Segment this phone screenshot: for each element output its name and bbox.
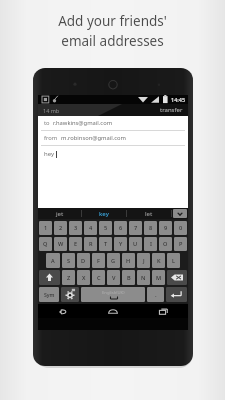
staticText: Q	[43, 240, 48, 248]
button[interactable]: 4	[84, 221, 97, 235]
button[interactable]: Z	[62, 270, 75, 285]
staticText: 5	[104, 224, 108, 232]
button[interactable]: M	[152, 270, 165, 285]
button[interactable]: C	[92, 270, 105, 285]
button[interactable]: .	[147, 287, 164, 302]
staticText: 0	[179, 224, 183, 232]
staticText: Y	[119, 240, 123, 248]
button[interactable]: 5	[99, 221, 112, 235]
staticText: R	[89, 240, 93, 248]
button[interactable]: N	[137, 270, 150, 285]
button[interactable]: Keyboard settings	[61, 287, 79, 302]
staticText: 4	[89, 224, 93, 232]
button[interactable]: transfer	[155, 105, 188, 115]
staticText: P	[179, 240, 183, 248]
button[interactable]: 3	[69, 221, 82, 235]
button[interactable]: Y	[114, 237, 127, 251]
staticText: D	[81, 257, 86, 265]
staticText: G	[111, 257, 116, 265]
staticText: T	[104, 240, 108, 248]
button[interactable]: jet	[38, 208, 81, 219]
button[interactable]: Home	[88, 304, 138, 318]
staticText: 9	[164, 224, 168, 232]
staticText: 6	[119, 224, 123, 232]
button[interactable]: 1	[39, 221, 52, 235]
staticText: .	[155, 291, 157, 299]
staticText: J	[143, 257, 145, 265]
staticText: from	[44, 134, 58, 142]
button[interactable]: L	[167, 253, 180, 268]
button[interactable]: U	[129, 237, 142, 251]
button[interactable]: H	[122, 253, 135, 268]
button[interactable]: 7	[129, 221, 142, 235]
button[interactable]: F	[92, 253, 105, 268]
button[interactable]: 0	[174, 221, 187, 235]
button[interactable]: from	[38, 131, 188, 145]
button[interactable]: G	[107, 253, 120, 268]
staticText: 1	[44, 224, 48, 232]
button[interactable]: hey	[38, 146, 188, 208]
staticText: r.hawkins@gmail.com	[53, 119, 113, 127]
staticText: English(UK)	[102, 290, 125, 296]
staticText: key	[99, 210, 109, 218]
staticText: A	[51, 257, 55, 265]
staticText: W	[58, 240, 64, 248]
button[interactable]: A	[46, 253, 60, 268]
staticText: 14:45	[171, 96, 186, 103]
button[interactable]: W	[54, 237, 67, 251]
button[interactable]: O	[159, 237, 172, 251]
button[interactable]: Backspace	[167, 270, 187, 285]
button[interactable]: J	[137, 253, 150, 268]
staticText: M	[156, 274, 162, 282]
button[interactable]: Show more suggestions	[173, 209, 187, 218]
staticText: E	[74, 240, 78, 248]
staticText: 7	[134, 224, 138, 232]
button[interactable]: X	[77, 270, 90, 285]
staticText: V	[112, 274, 116, 282]
button[interactable]: let	[127, 208, 171, 219]
staticText: X	[82, 274, 86, 282]
button[interactable]: Back	[38, 304, 88, 318]
staticText: jet	[56, 210, 64, 218]
button[interactable]: 9	[159, 221, 172, 235]
staticText: m.robinson@gmail.com	[61, 134, 126, 142]
button[interactable]: T	[99, 237, 112, 251]
button[interactable]: K	[152, 253, 165, 268]
staticText: Z	[67, 274, 71, 282]
button[interactable]: S	[62, 253, 75, 268]
staticText: L	[172, 257, 175, 265]
staticText: transfer	[160, 106, 183, 114]
button[interactable]: V	[107, 270, 120, 285]
staticText: H	[126, 257, 131, 265]
staticText: O	[163, 240, 168, 248]
button[interactable]: key	[82, 208, 126, 219]
staticText: let	[145, 210, 153, 218]
staticText: C	[97, 274, 101, 282]
staticText: 14 mb	[43, 107, 60, 114]
staticText: Add your friends'	[58, 12, 167, 30]
button[interactable]: to	[38, 116, 188, 130]
staticText: B	[127, 274, 131, 282]
button[interactable]: Space	[81, 287, 145, 302]
button[interactable]: B	[122, 270, 135, 285]
staticText: 3	[74, 224, 78, 232]
button[interactable]: Shift	[39, 270, 60, 285]
button[interactable]: Recent apps	[138, 304, 188, 318]
button[interactable]: Q	[39, 237, 52, 251]
staticText: Sym	[44, 291, 55, 298]
button[interactable]: 6	[114, 221, 127, 235]
button[interactable]: R	[84, 237, 97, 251]
button[interactable]: E	[69, 237, 82, 251]
staticText: 8	[149, 224, 153, 232]
button[interactable]: Sym	[39, 287, 59, 302]
button[interactable]: Enter	[166, 287, 187, 302]
staticText: 2	[59, 224, 63, 232]
button[interactable]: D	[77, 253, 90, 268]
staticText: U	[133, 240, 138, 248]
button[interactable]: I	[144, 237, 157, 251]
staticText: to	[44, 119, 50, 127]
button[interactable]: 2	[54, 221, 67, 235]
button[interactable]: 8	[144, 221, 157, 235]
button[interactable]: P	[174, 237, 187, 251]
staticText: I	[150, 240, 152, 248]
